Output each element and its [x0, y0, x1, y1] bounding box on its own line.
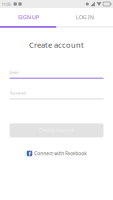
button[interactable]: LOG IN: [56, 8, 113, 26]
button[interactable]: f: [27, 150, 86, 157]
button[interactable]: Create Account: [10, 123, 103, 137]
staticText: LOG IN: [76, 13, 94, 21]
staticText: Connect with Facebook: [34, 150, 86, 157]
button[interactable]: SIGN UP: [0, 8, 56, 26]
staticText: SIGN UP: [18, 13, 39, 21]
staticText: f: [28, 149, 30, 158]
staticText: Create account: [29, 40, 84, 50]
staticText: Password: [10, 91, 26, 95]
staticText: 11:05: [2, 1, 11, 7]
staticText: Email: [10, 70, 19, 75]
staticText: Create Account: [39, 127, 74, 134]
